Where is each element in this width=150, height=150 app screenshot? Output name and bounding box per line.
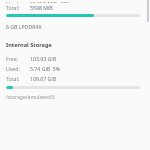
staticText: 6 GB LPDDR4X xyxy=(6,23,42,30)
button[interactable]: Internal Storage xyxy=(0,41,150,49)
staticText: Internal Storage xyxy=(6,41,52,49)
staticText: Free: xyxy=(6,55,30,62)
staticText: /storage/emulated/0 xyxy=(6,94,55,101)
button[interactable]: Free: xyxy=(0,54,150,63)
button[interactable]: Total: xyxy=(0,74,150,83)
staticText: Used: xyxy=(6,0,30,3)
button[interactable]: Used: xyxy=(0,0,150,3)
button[interactable]: Used: xyxy=(0,64,150,73)
button[interactable]: /storage/emulated/0 xyxy=(0,94,150,101)
staticText: 109.67 GiB xyxy=(30,75,57,82)
staticText: 5598 MiB xyxy=(30,4,53,11)
staticText: 103.93 GiB xyxy=(30,55,57,62)
other: Scroll position xyxy=(147,0,149,22)
button[interactable]: 6 GB LPDDR4X xyxy=(0,23,150,30)
button[interactable]: Total: xyxy=(0,3,150,12)
staticText: Used: xyxy=(6,65,30,72)
staticText: Total: xyxy=(6,75,30,82)
staticText: 2142.9 MiB 40% xyxy=(30,0,70,3)
staticText: Total: xyxy=(6,4,30,11)
staticText: 5.74 GiB 5% xyxy=(30,65,61,72)
